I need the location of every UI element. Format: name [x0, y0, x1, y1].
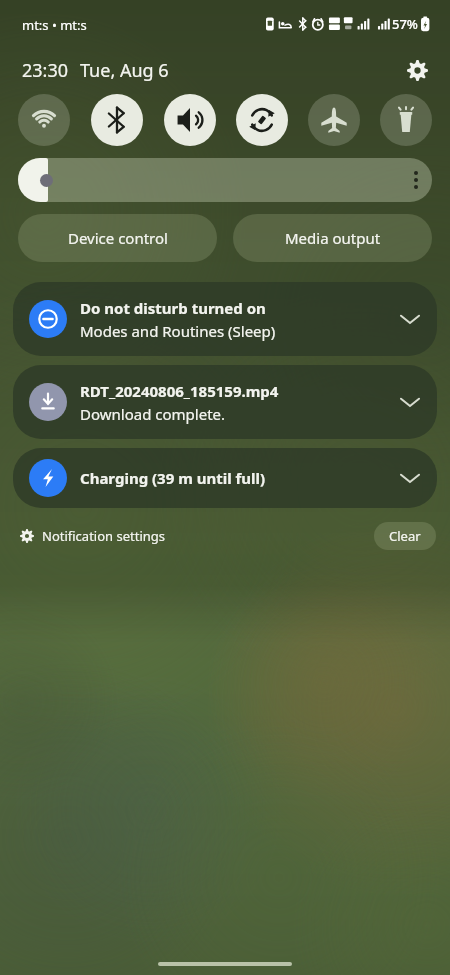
button[interactable]: Expand — [395, 463, 425, 493]
button[interactable]: Sound — [164, 94, 216, 146]
staticText: Modes and Routines (Sleep) — [80, 321, 276, 341]
button[interactable]: Media output — [233, 214, 432, 262]
button[interactable]: Settings — [400, 53, 434, 87]
button[interactable]: Clear — [374, 522, 436, 550]
button[interactable]: Download complete — [13, 365, 437, 439]
button[interactable]: Bluetooth — [91, 94, 143, 146]
button[interactable]: Device control — [18, 214, 217, 262]
button[interactable]: Expand — [395, 387, 425, 417]
button[interactable]: Wi-Fi — [18, 94, 70, 146]
staticText: 57% — [392, 15, 418, 33]
staticText: Download complete. — [80, 404, 226, 424]
staticText: mt:s • mt:s — [22, 16, 87, 34]
button[interactable]: Do not disturb turned on — [13, 282, 437, 356]
staticText: RDT_20240806_185159.mp4 — [80, 381, 279, 401]
staticText: 23:30 — [22, 58, 69, 83]
staticText: Media output — [285, 228, 381, 248]
staticText: Device control — [68, 228, 168, 248]
staticText: Tue, Aug 6 — [80, 58, 169, 83]
button[interactable]: Expand — [395, 304, 425, 334]
staticText: Clear — [389, 527, 421, 545]
button[interactable]: Notification settings — [18, 525, 168, 547]
button[interactable]: Airplane mode — [308, 94, 360, 146]
staticText: Notification settings — [42, 527, 166, 545]
button[interactable]: Flashlight — [380, 94, 432, 146]
button[interactable]: Charging — [13, 448, 437, 508]
button[interactable]: Auto rotate — [236, 94, 288, 146]
button[interactable]: Brightness — [18, 158, 432, 202]
staticText: Do not disturb turned on — [80, 298, 266, 318]
staticText: Charging (39 m until full) — [80, 468, 266, 488]
